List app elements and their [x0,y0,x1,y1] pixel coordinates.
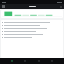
button[interactable] [2,27,62,29]
button[interactable] [2,36,62,38]
button[interactable] [2,30,62,32]
button[interactable]: Menu [0,4,64,9]
button[interactable] [2,24,62,26]
button[interactable] [2,21,62,23]
button[interactable] [1,10,63,18]
button[interactable]: Home [10,58,14,64]
button[interactable]: Stats [23,58,27,64]
button[interactable] [2,33,62,35]
button[interactable]: Profile [50,58,54,64]
button[interactable]: Alerts [37,58,41,64]
